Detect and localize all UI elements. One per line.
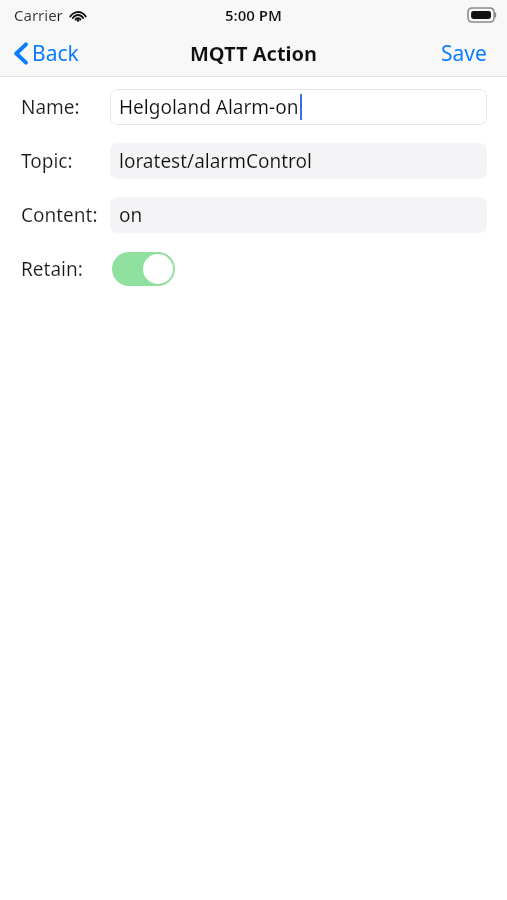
staticText: Helgoland Alarm-on bbox=[119, 94, 299, 120]
staticText: Carrier bbox=[14, 5, 63, 25]
staticText: Content: bbox=[21, 202, 98, 228]
button[interactable]: on bbox=[110, 197, 487, 233]
staticText: 5:00 PM bbox=[225, 5, 282, 25]
button[interactable]: Save bbox=[427, 33, 507, 74]
staticText: Save bbox=[441, 39, 487, 68]
staticText: Back bbox=[32, 39, 79, 68]
staticText: Name: bbox=[21, 94, 80, 120]
button[interactable]: loratest/alarmControl bbox=[110, 143, 487, 179]
staticText: on bbox=[119, 202, 143, 228]
button[interactable]: Retain toggle, on bbox=[112, 252, 175, 286]
staticText: Retain: bbox=[21, 256, 83, 282]
button[interactable]: Helgoland Alarm-on bbox=[110, 89, 487, 125]
staticText: MQTT Action bbox=[190, 40, 318, 67]
staticText: loratest/alarmControl bbox=[119, 148, 312, 174]
staticText: Topic: bbox=[21, 148, 73, 174]
button[interactable]: Back bbox=[0, 33, 91, 74]
